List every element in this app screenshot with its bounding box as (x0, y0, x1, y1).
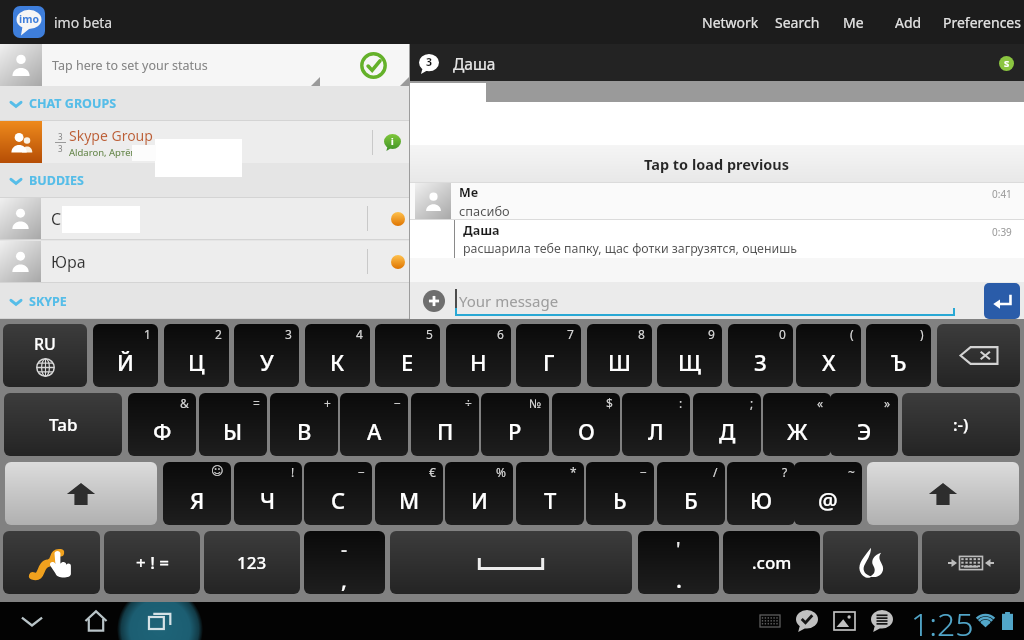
button[interactable]: Ы (199, 393, 267, 456)
button[interactable]: З (728, 324, 793, 387)
button[interactable]: space (390, 531, 632, 594)
button[interactable]: Network (695, 0, 766, 44)
button[interactable]: Н (446, 324, 511, 387)
button[interactable]: Tap to load previous (410, 145, 1024, 182)
button[interactable]: Г (516, 324, 581, 387)
button[interactable]: Ь (586, 462, 654, 525)
staticText: * (570, 464, 577, 480)
staticText: У (260, 347, 274, 377)
button[interactable]: Search (768, 0, 827, 44)
button[interactable]: Б (657, 462, 725, 525)
button[interactable]: C (0, 198, 409, 239)
button[interactable]: Т (516, 462, 584, 525)
staticText: М (399, 485, 420, 515)
staticText: € (429, 464, 436, 480)
staticText: П (437, 416, 454, 446)
button[interactable]: Ф (128, 393, 196, 456)
button[interactable]: М (375, 462, 443, 525)
button[interactable]: Е (375, 324, 440, 387)
staticText: Даша (453, 53, 496, 74)
button[interactable]: swipe (3, 531, 100, 594)
button[interactable]: Й (93, 324, 158, 387)
staticText: 3 (58, 131, 63, 142)
button[interactable]: + ! = (104, 531, 200, 594)
button[interactable]: , (304, 531, 385, 594)
button[interactable]: ru (3, 324, 87, 387)
button[interactable]: Л (622, 393, 690, 456)
staticText: 9 (708, 326, 715, 342)
button[interactable]: Add (888, 0, 929, 44)
button[interactable]: hide (922, 531, 1020, 594)
button[interactable]: Ъ (866, 324, 931, 387)
button[interactable]: . (638, 531, 719, 594)
button[interactable]: imo logo (13, 6, 45, 38)
button[interactable]: CHAT GROUPS (0, 86, 409, 121)
button[interactable]: .com (723, 531, 820, 594)
staticText: , (341, 564, 348, 594)
staticText: Ж (787, 416, 808, 446)
staticText: % (496, 464, 506, 480)
button[interactable]: Home (64, 602, 128, 640)
staticText: Щ (678, 347, 701, 377)
button[interactable]: О (552, 393, 620, 456)
button[interactable]: Tab (4, 393, 122, 456)
staticText: Me (459, 184, 479, 201)
button[interactable]: Tap here to set your status (0, 44, 409, 86)
button[interactable]: shift (867, 462, 1019, 525)
staticText: . (676, 564, 682, 594)
button[interactable]: Recent apps (128, 602, 192, 640)
button[interactable]: Ч (234, 462, 302, 525)
staticText: : (679, 395, 683, 411)
button[interactable]: Щ (657, 324, 722, 387)
button[interactable]: Даша (410, 220, 1024, 258)
button[interactable]: Х (796, 324, 861, 387)
button[interactable]: Add attachment (423, 290, 445, 312)
button[interactable]: Me (836, 0, 871, 44)
button[interactable]: К (305, 324, 370, 387)
button[interactable]: SKYPE (0, 284, 409, 319)
button[interactable]: 3 unread (419, 54, 439, 74)
button[interactable]: Back (0, 602, 64, 640)
button[interactable]: Юра (0, 241, 409, 282)
staticText: C (51, 208, 62, 230)
button[interactable]: Preferences (936, 0, 1024, 44)
button[interactable]: Ц (164, 324, 229, 387)
button[interactable]: С (304, 462, 372, 525)
button[interactable]: И (445, 462, 513, 525)
button[interactable]: У (234, 324, 299, 387)
staticText: Me (843, 13, 864, 32)
button[interactable]: Send (984, 283, 1020, 319)
staticText: 7 (567, 326, 574, 342)
button[interactable]: bksp (937, 324, 1020, 387)
button[interactable]: Д (693, 393, 761, 456)
button[interactable]: Р (481, 393, 549, 456)
staticText: ' (676, 536, 681, 562)
button[interactable]: BUDDIES (0, 163, 409, 198)
button[interactable]: Ш (587, 324, 652, 387)
button[interactable]: Ю (727, 462, 795, 525)
staticText: Ы (223, 416, 243, 446)
button[interactable]: Your message (455, 285, 955, 316)
button[interactable]: Ж (763, 393, 831, 456)
button[interactable]: В (270, 393, 338, 456)
button[interactable]: 123 (204, 531, 300, 594)
button[interactable]: shift (5, 462, 157, 525)
button[interactable]: Я (163, 462, 231, 525)
staticText: 6 (497, 326, 504, 342)
button[interactable]: @ (794, 462, 862, 525)
staticText: О (578, 416, 595, 446)
button[interactable]: fire (823, 531, 918, 594)
button[interactable]: 3 (0, 121, 409, 163)
staticText: Network (702, 13, 759, 32)
staticText: Я (190, 485, 205, 515)
button[interactable]: :-) (902, 393, 1020, 456)
staticText: 0 (779, 326, 786, 342)
button[interactable]: П (411, 393, 479, 456)
button[interactable]: Skype (999, 56, 1014, 71)
button[interactable]: Э (830, 393, 898, 456)
button[interactable]: Me (410, 183, 1024, 219)
button[interactable]: А (340, 393, 408, 456)
staticText: Tab (49, 413, 78, 436)
staticText: » (884, 395, 891, 411)
